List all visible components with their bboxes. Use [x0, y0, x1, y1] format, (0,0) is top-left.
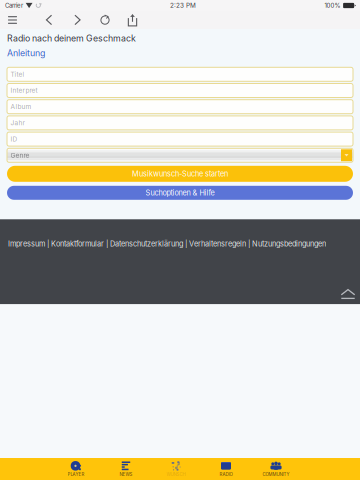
button[interactable]: Scroll to top [339, 287, 357, 301]
button[interactable]: Musikwunsch-Suche starten [7, 166, 353, 182]
button[interactable]: ID [7, 132, 353, 146]
button[interactable]: Forward [69, 11, 85, 29]
button[interactable]: Album [7, 100, 353, 114]
staticText: Interpret [10, 86, 37, 94]
staticText: Jahr [10, 119, 24, 127]
staticText: COMMUNITY [262, 472, 289, 477]
staticText: NEWS [119, 472, 132, 477]
staticText: Suchoptionen & Hilfe [145, 188, 214, 197]
staticText: PLAYER [67, 472, 84, 477]
staticText: RADIO [219, 472, 232, 477]
button[interactable]: Menu [4, 11, 21, 29]
staticText: Impressum | Kontaktformular | Datenschut… [8, 239, 326, 248]
staticText: Titel [10, 70, 24, 78]
button[interactable]: COMMUNITY [251, 458, 301, 480]
button[interactable]: Interpret [7, 83, 353, 97]
staticText: Album [10, 103, 31, 111]
button[interactable]: Genre [7, 148, 353, 162]
button[interactable]: WUNSCH [151, 458, 201, 480]
button[interactable]: Reload [97, 11, 113, 29]
staticText: Genre [10, 151, 29, 159]
staticText: WUNSCH [166, 472, 185, 477]
button[interactable]: Titel [7, 67, 353, 81]
button[interactable]: Share [124, 11, 140, 29]
button[interactable]: Jahr [7, 116, 353, 130]
staticText: Radio nach deinem Geschmack [7, 33, 136, 44]
staticText: 100% [324, 2, 340, 9]
staticText: Carrier [5, 2, 23, 9]
staticText: Musikwunsch-Suche starten [132, 169, 228, 178]
staticText: ID [10, 135, 17, 143]
button[interactable]: RADIO [201, 458, 251, 480]
button[interactable]: NEWS [101, 458, 151, 480]
button[interactable]: PLAYER [51, 458, 101, 480]
button[interactable]: Anleitung [7, 48, 45, 58]
staticText: Anleitung [7, 48, 45, 58]
button[interactable]: Suchoptionen & Hilfe [7, 186, 353, 200]
staticText: 2:23 PM [170, 2, 196, 9]
button[interactable]: Back [41, 11, 57, 29]
